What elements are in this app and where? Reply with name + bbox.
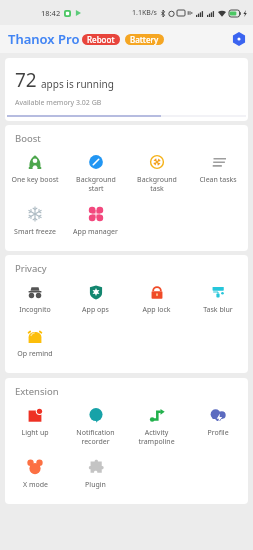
button[interactable]: Clean tasks <box>187 147 248 191</box>
staticText: One key boost <box>11 175 59 185</box>
staticText: Available memory 3.02 GB <box>15 98 102 108</box>
staticText: 72 <box>15 67 37 93</box>
staticText: Incognito <box>19 305 51 315</box>
staticText: App manager <box>73 227 118 237</box>
staticText: Thanox Pro <box>8 30 80 48</box>
button[interactable]: Op remind <box>5 321 65 365</box>
button[interactable]: Task blur <box>187 277 248 321</box>
staticText: Smart freeze <box>14 227 56 237</box>
button[interactable]: X mode <box>5 452 65 496</box>
staticText: apps is running <box>41 77 114 91</box>
button[interactable]: Background task <box>126 147 187 199</box>
button[interactable]: Plugin <box>65 452 126 496</box>
staticText: App ops <box>82 305 109 315</box>
button[interactable]: Reboot <box>82 34 120 45</box>
staticText: Clean tasks <box>199 175 237 185</box>
staticText: Activity trampoline <box>138 428 175 446</box>
button[interactable]: Profile <box>187 400 248 444</box>
button[interactable]: App lock <box>126 277 187 321</box>
staticText: X mode <box>23 480 48 490</box>
staticText: Profile <box>207 428 229 438</box>
button[interactable]: Light up <box>5 400 65 444</box>
staticText: Boost <box>15 132 41 145</box>
staticText: Battery <box>130 34 159 45</box>
button[interactable]: App manager <box>65 199 126 243</box>
button[interactable]: Settings <box>229 29 249 49</box>
staticText: Background task <box>137 175 177 193</box>
staticText: 1.1KB/s <box>132 8 158 18</box>
staticText: App lock <box>142 305 171 315</box>
staticText: Notification recorder <box>76 428 115 446</box>
button[interactable]: Notification recorder <box>65 400 126 452</box>
staticText: Plugin <box>85 480 106 490</box>
button[interactable]: App ops <box>65 277 126 321</box>
button[interactable]: Smart freeze <box>5 199 65 243</box>
button[interactable]: One key boost <box>5 147 65 191</box>
staticText: Op remind <box>17 349 53 359</box>
button[interactable]: Battery <box>125 34 164 45</box>
staticText: Extension <box>15 385 59 398</box>
staticText: Reboot <box>87 34 115 45</box>
staticText: 18:42 <box>41 8 61 18</box>
staticText: Privacy <box>15 262 47 275</box>
staticText: Task blur <box>203 305 233 315</box>
button[interactable]: Incognito <box>5 277 65 321</box>
button[interactable]: Background start <box>65 147 126 199</box>
staticText: Background start <box>76 175 116 193</box>
staticText: Light up <box>21 428 49 438</box>
button[interactable]: Activity trampoline <box>126 400 187 452</box>
